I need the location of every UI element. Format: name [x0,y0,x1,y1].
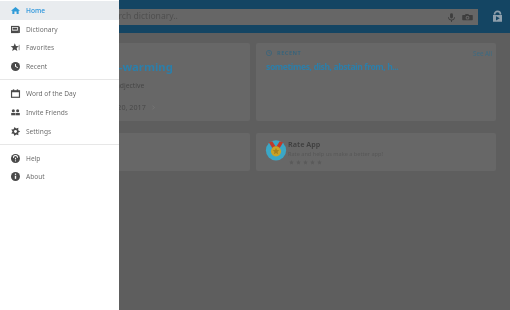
staticText: See All [473,49,493,57]
staticText: Help [26,154,41,163]
staticText: Jan 20, 2017 [105,102,146,112]
staticText: Favorites [26,43,55,52]
button[interactable]: Camera search [462,12,473,23]
button[interactable]: Word of the Day [0,84,119,103]
button[interactable]: See All [473,49,493,57]
button[interactable]: heart-warming [11,43,250,121]
button[interactable]: Home [0,1,119,20]
staticText: RECENT [277,49,302,57]
staticText: Rate App [288,139,321,149]
staticText: Home [26,6,45,15]
staticText: Dictionary [26,25,58,34]
button[interactable]: Favorites [0,38,119,57]
button[interactable]: Invite Friends [0,103,119,122]
button[interactable]: Dictionary [0,20,119,39]
staticText: adjective [116,81,145,90]
staticText: About [26,172,45,181]
button[interactable]: About [0,167,119,186]
button[interactable]: Play protect [490,9,505,24]
button[interactable]: Rate App [256,133,496,171]
staticText: Search dictionary.. [104,10,178,22]
staticText: Word of the Day [26,89,77,98]
button[interactable]: Voice search [446,12,457,23]
staticText: Settings [26,127,52,136]
staticText: Rate and help us make a better app! [288,150,383,158]
button[interactable]: Help [0,149,119,168]
staticText: sometimes, dish, abstain from, h... [266,61,399,73]
staticText: Invite Friends [26,108,69,117]
button[interactable]: Settings [0,122,119,141]
button[interactable]: Recent [0,57,119,76]
staticText: heart-warming [88,59,173,74]
staticText: Recent [26,62,48,71]
